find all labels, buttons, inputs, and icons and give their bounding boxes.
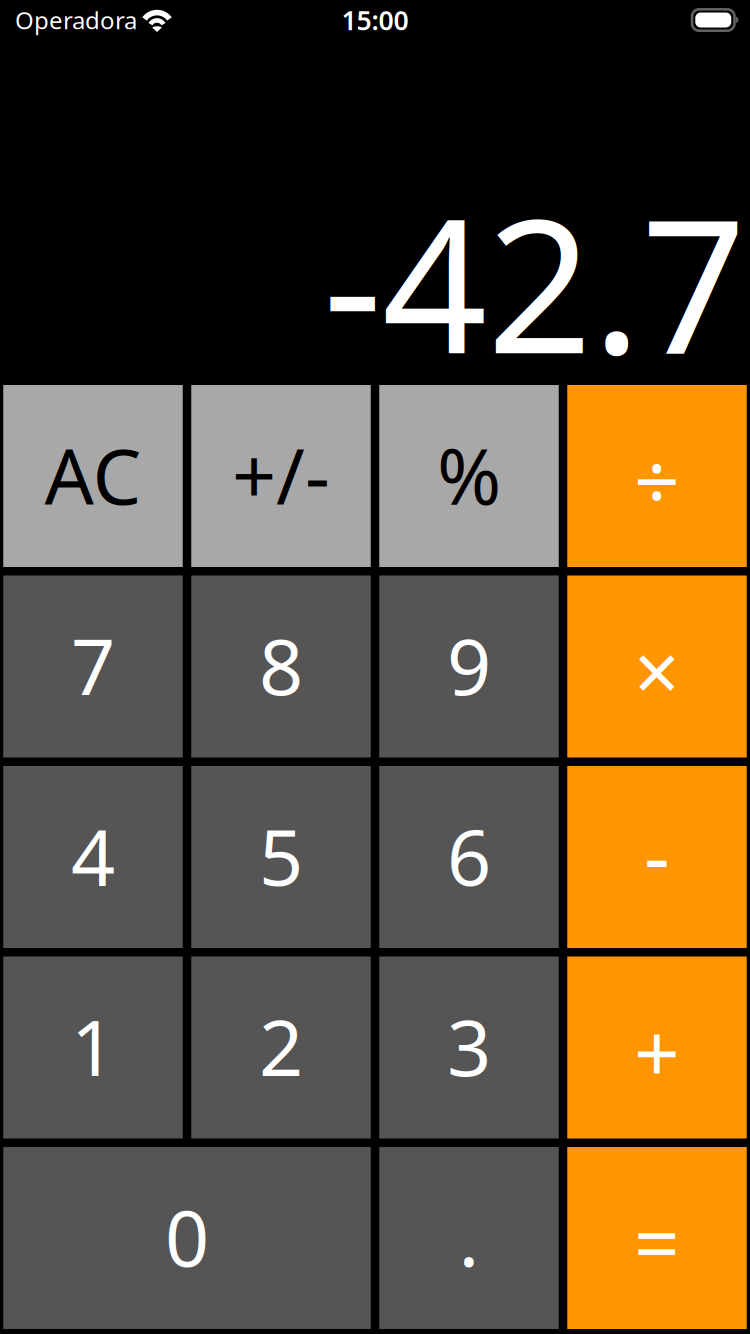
button[interactable]: 6 [379,766,559,948]
button[interactable]: 8 [191,575,371,757]
button[interactable]: Divide [567,385,747,567]
staticText: - [644,801,670,907]
button[interactable]: Percent [379,385,559,567]
staticText: 1 [71,995,115,1097]
button[interactable]: Equals [567,1147,747,1329]
button[interactable]: 5 [191,766,371,948]
button[interactable]: All clear [3,385,183,567]
staticText: AC [44,423,141,526]
staticText: . [458,1185,479,1288]
staticText: -42.7 [323,160,746,404]
staticText: = [634,1188,680,1294]
button[interactable]: 9 [379,575,559,757]
button[interactable]: Plus minus [191,385,371,567]
staticText: 15:00 [341,2,408,38]
staticText: 5 [259,804,303,907]
staticText: + [634,998,680,1105]
staticText: 6 [447,804,491,907]
staticText: × [634,617,680,724]
staticText: 3 [447,995,491,1097]
button[interactable]: Subtract [567,766,747,948]
button[interactable]: Add [567,956,747,1138]
staticText: Operadora [15,4,137,36]
button[interactable]: 0 [3,1147,371,1329]
button[interactable]: Multiply [567,575,747,757]
button[interactable]: 4 [3,766,183,948]
staticText: 7 [71,614,115,716]
staticText: 9 [447,614,491,716]
button[interactable]: 3 [379,956,559,1138]
staticText: 8 [259,614,303,716]
staticText: +/- [232,423,330,526]
button[interactable]: 1 [3,956,183,1138]
button[interactable]: Decimal point [379,1147,559,1329]
staticText: ÷ [634,427,680,533]
staticText: % [437,423,501,526]
button[interactable]: 2 [191,956,371,1138]
staticText: 4 [71,804,115,907]
staticText: 0 [165,1185,209,1288]
button[interactable]: 7 [3,575,183,757]
staticText: 2 [259,995,303,1097]
